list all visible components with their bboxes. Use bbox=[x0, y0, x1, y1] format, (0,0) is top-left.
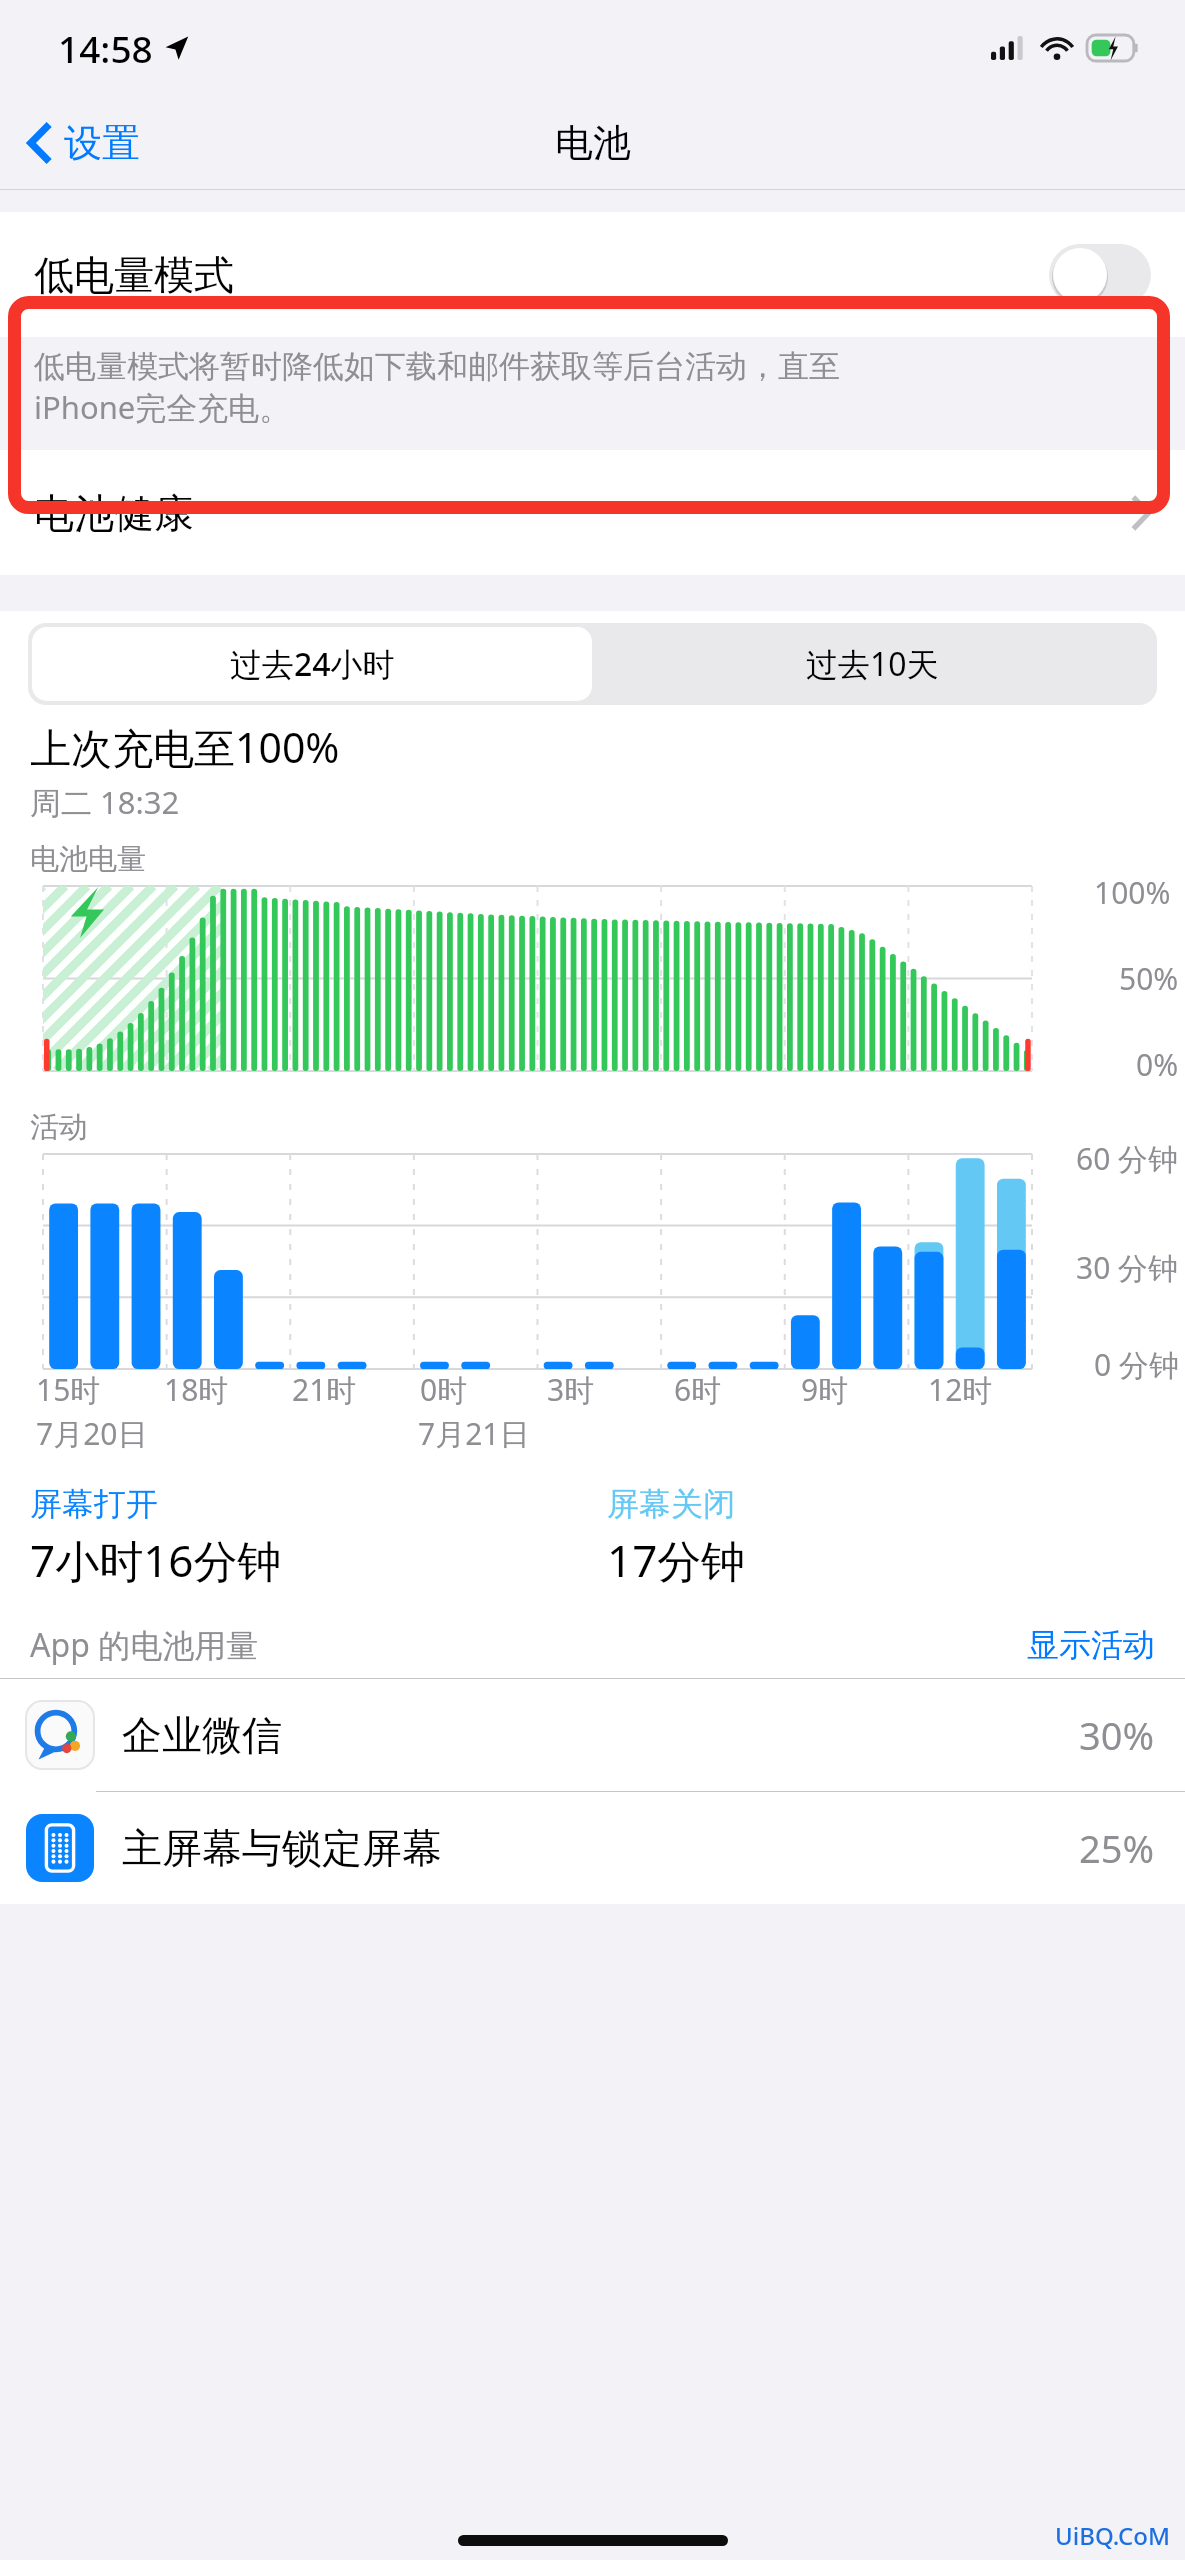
staticText: 设置 bbox=[64, 119, 140, 167]
staticText: 100% bbox=[1094, 872, 1171, 913]
button[interactable]: 主屏幕与锁定屏幕 bbox=[0, 1792, 1185, 1904]
staticText: 屏幕关闭 bbox=[607, 1484, 735, 1524]
staticText: 21时 bbox=[292, 1369, 357, 1410]
staticText: 60 分钟 bbox=[1076, 1138, 1179, 1179]
staticText: 7小时16分钟 bbox=[30, 1530, 282, 1590]
button[interactable]: 企业微信 bbox=[0, 1679, 1185, 1791]
staticText: iPhone完全充电。 bbox=[34, 386, 291, 428]
staticText: 7月20日 bbox=[36, 1413, 148, 1454]
staticText: 15时 bbox=[36, 1369, 101, 1410]
staticText: 0% bbox=[1136, 1044, 1179, 1085]
staticText: 电池电量 bbox=[30, 841, 146, 878]
staticText: 上次充电至100% bbox=[30, 719, 340, 775]
staticText: 0时 bbox=[420, 1369, 468, 1410]
staticText: 显示活动 bbox=[1027, 1625, 1155, 1665]
staticText: 周二 18:32 bbox=[30, 781, 180, 823]
button[interactable]: 显示活动 bbox=[1027, 1625, 1155, 1665]
staticText: 12时 bbox=[928, 1369, 993, 1410]
staticText: 电池 bbox=[555, 119, 631, 167]
staticText: 活动 bbox=[30, 1109, 88, 1146]
staticText: 3时 bbox=[547, 1369, 595, 1410]
staticText: 7月21日 bbox=[418, 1413, 530, 1454]
staticText: 6时 bbox=[674, 1369, 722, 1410]
staticText: 0 分钟 bbox=[1094, 1344, 1179, 1385]
button[interactable]: 电池健康 bbox=[0, 450, 1185, 575]
staticText: 低电量模式将暂时降低如下载和邮件获取等后台活动，直至 bbox=[34, 347, 840, 386]
button[interactable]: 低电量模式 bbox=[0, 212, 1185, 337]
button[interactable]: 过去10天 bbox=[592, 627, 1153, 701]
staticText: 过去10天 bbox=[806, 642, 939, 686]
staticText: 过去24小时 bbox=[230, 642, 395, 686]
staticText: 主屏幕与锁定屏幕 bbox=[122, 1823, 442, 1873]
staticText: 17分钟 bbox=[607, 1530, 746, 1590]
staticText: 企业微信 bbox=[122, 1710, 282, 1760]
staticText: 14:58 bbox=[58, 23, 153, 73]
staticText: 30 分钟 bbox=[1076, 1247, 1179, 1288]
button[interactable]: 低电量模式开关 bbox=[1049, 244, 1151, 306]
staticText: 30% bbox=[1079, 1709, 1155, 1761]
staticText: 电池健康 bbox=[34, 488, 194, 538]
staticText: App 的电池用量 bbox=[30, 1623, 259, 1667]
staticText: 18时 bbox=[164, 1369, 229, 1410]
staticText: 25% bbox=[1079, 1822, 1155, 1874]
staticText: UiBQ.CoM bbox=[1055, 2519, 1171, 2552]
staticText: 50% bbox=[1119, 958, 1179, 999]
staticText: 低电量模式 bbox=[34, 250, 234, 300]
staticText: 屏幕打开 bbox=[30, 1484, 158, 1524]
button[interactable]: 过去24小时 bbox=[32, 627, 592, 701]
staticText: 9时 bbox=[801, 1369, 849, 1410]
button[interactable]: 设置 bbox=[0, 111, 156, 175]
